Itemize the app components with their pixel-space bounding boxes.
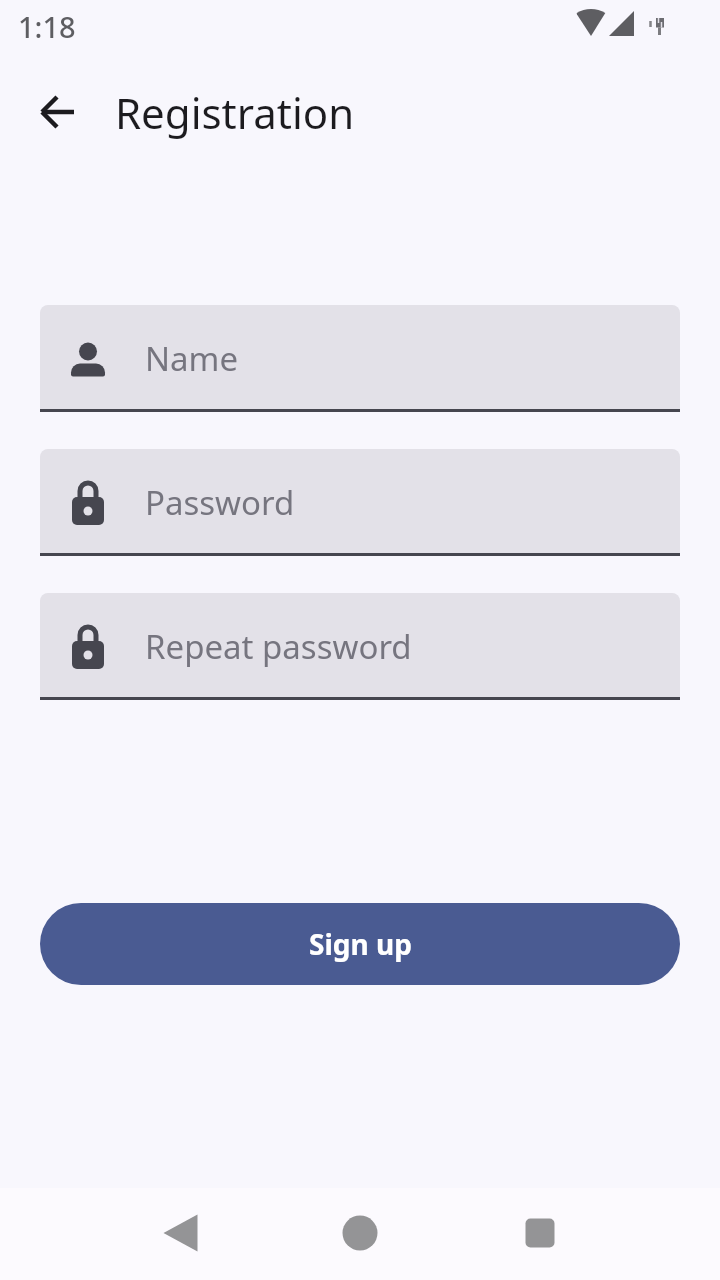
staticText: Repeat password — [145, 624, 412, 669]
button[interactable]: Sign up — [40, 903, 680, 985]
button[interactable]: Name — [40, 305, 680, 412]
staticText: Sign up — [309, 925, 412, 963]
staticText: Registration — [115, 84, 355, 141]
button[interactable]: Password — [40, 449, 680, 556]
button[interactable] — [336, 1209, 384, 1257]
staticText: Name — [145, 336, 239, 381]
button[interactable] — [34, 88, 82, 136]
staticText: Password — [145, 480, 295, 525]
button[interactable] — [156, 1209, 204, 1257]
staticText: 1:18 — [18, 7, 76, 46]
button[interactable]: Repeat password — [40, 593, 680, 700]
button[interactable] — [516, 1209, 564, 1257]
